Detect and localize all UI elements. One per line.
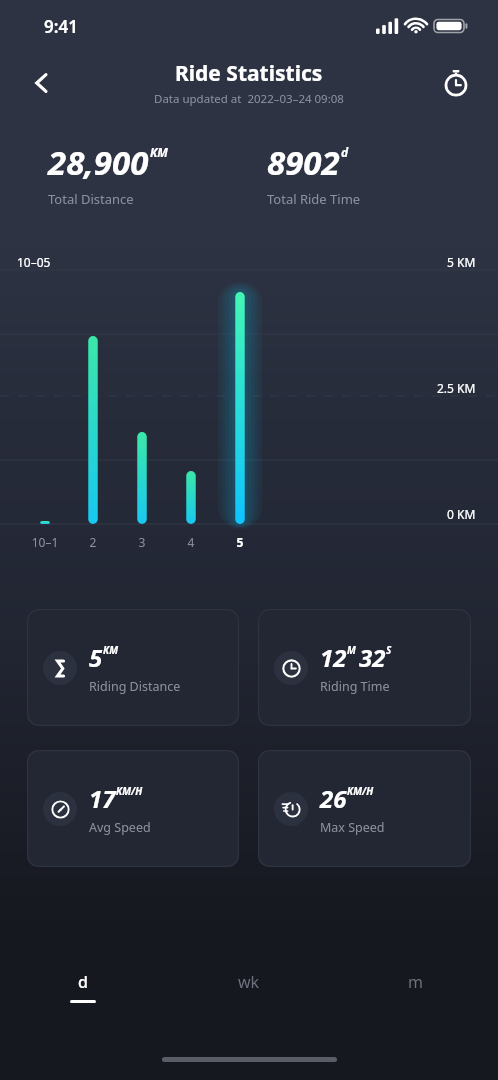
- staticText: 2: [71, 534, 115, 550]
- staticText: S: [386, 643, 392, 657]
- staticText: 10–1: [23, 534, 67, 550]
- staticText: 3: [120, 534, 164, 550]
- staticText: 8902: [267, 140, 340, 185]
- button[interactable]: d: [0, 961, 166, 1019]
- staticText: KM/H: [347, 784, 374, 798]
- staticText: 17: [89, 782, 116, 815]
- staticText: d: [341, 144, 349, 160]
- staticText: KM: [103, 643, 118, 657]
- staticText: Avg Speed: [89, 819, 151, 836]
- staticText: Max Speed: [320, 819, 385, 836]
- button[interactable]: Back: [20, 61, 64, 105]
- staticText: M: [347, 643, 356, 657]
- staticText: 9:41: [44, 15, 78, 38]
- button[interactable]: 17: [27, 750, 239, 867]
- button[interactable]: 12: [258, 609, 471, 726]
- staticText: KM/H: [116, 784, 143, 798]
- button[interactable]: 5: [27, 609, 239, 726]
- staticText: 5: [89, 641, 103, 674]
- staticText: Total Distance: [48, 190, 134, 208]
- staticText: Riding Distance: [89, 678, 181, 695]
- staticText: 4: [169, 534, 213, 550]
- staticText: m: [408, 971, 423, 993]
- staticText: 26: [320, 782, 347, 815]
- staticText: 5: [218, 534, 262, 550]
- staticText: Ride Statistics: [175, 59, 323, 88]
- button[interactable]: Stopwatch: [434, 61, 478, 105]
- staticText: wk: [238, 971, 260, 993]
- staticText: d: [78, 971, 88, 993]
- staticText: 32: [359, 641, 386, 674]
- staticText: 2.5 KM: [437, 380, 476, 396]
- button[interactable]: m: [332, 961, 498, 1019]
- button[interactable]: wk: [166, 961, 332, 1019]
- button[interactable]: 26: [258, 750, 471, 867]
- staticText: Data updated at 2022–03–24 09:08: [154, 91, 344, 107]
- staticText: Riding Time: [320, 678, 390, 695]
- staticText: 5 KM: [447, 254, 476, 270]
- staticText: 10–05: [17, 254, 51, 270]
- staticText: 0 KM: [447, 506, 476, 522]
- staticText: 28,900: [48, 140, 149, 185]
- staticText: 12: [320, 641, 347, 674]
- staticText: Total Ride Time: [267, 190, 361, 208]
- staticText: KM: [150, 144, 168, 160]
